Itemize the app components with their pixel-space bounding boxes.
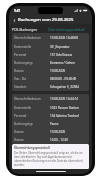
staticText: 08:00:00 - 09:30:00	[50, 77, 87, 81]
staticText: 157 Udo Krause	[50, 53, 87, 57]
staticText: Personal	[14, 53, 50, 57]
staticText: Kostenstelle	[14, 45, 50, 49]
staticText: 19.08.2025 13:48:08	[50, 36, 87, 40]
staticText: Kommen / Gehen	[50, 61, 87, 65]
button[interactable]: Übermittlungsprotokoll	[48, 24, 92, 33]
staticText: Datum	[14, 130, 50, 134]
staticText: Von - Bis	[14, 77, 50, 81]
staticText: 19.08.2025	[50, 130, 87, 134]
staticText: 19.08.2025	[50, 69, 87, 73]
staticText: Kostenstelle	[14, 106, 50, 110]
staticText: Standort	[14, 85, 50, 89]
staticText: Übermittlungsprotokoll	[48, 27, 85, 31]
staticText: 9:41	[14, 9, 21, 13]
staticText: Überschriftsdatum	[14, 97, 50, 101]
staticText: 1023 Pausen Station	[50, 106, 87, 110]
staticText: Übermittlungsprotokoll	[14, 146, 50, 150]
staticText: 12:00 - 12:30	[50, 138, 87, 142]
staticText: 154 Sabrina Trachsel	[50, 114, 87, 118]
staticText: 19.08.2025 13:44:14	[50, 97, 87, 101]
staticText: Buchungen vom 29.08.2025	[18, 17, 74, 23]
staticText: 30 _Reparatur	[50, 45, 87, 49]
staticText: Pause	[50, 122, 87, 126]
staticText: Überschriftsdatum	[14, 36, 50, 40]
button[interactable]: Back	[11, 17, 17, 23]
staticText: Personal	[14, 114, 50, 118]
button[interactable]: POS-Buchungen	[9, 24, 48, 33]
staticText: Datum	[14, 138, 50, 142]
staticText: Der Reiter Übermittlungsprotokoll zeigt …	[14, 151, 87, 167]
button[interactable]: Überschriftsdatum	[12, 33, 89, 91]
staticText: Buchungstyp	[14, 122, 50, 126]
staticText: Buchungstyp	[14, 61, 50, 65]
staticText: Schugarten 5, 32584 Löhne,	[50, 85, 87, 89]
staticText: POS-Buchungen	[12, 27, 38, 31]
button[interactable]: Überschriftsdatum	[12, 94, 89, 144]
staticText: Datum	[14, 69, 50, 73]
